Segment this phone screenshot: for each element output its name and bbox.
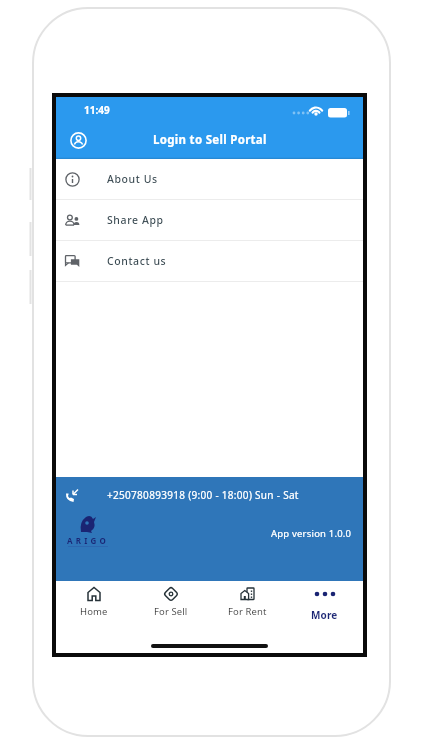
button[interactable]: For Sell (132, 581, 209, 643)
button[interactable]: Share App (56, 200, 363, 240)
button[interactable]: Contact us (56, 241, 363, 281)
button[interactable]: +250780893918 (9:00 - 18:00) Sun - Sat (65, 485, 372, 505)
button[interactable] (64, 126, 92, 154)
staticText: ARIGO (67, 535, 110, 546)
button[interactable]: About Us (56, 159, 363, 199)
staticText: Home (80, 605, 108, 618)
staticText: For Sell (154, 605, 188, 618)
button[interactable]: Home (56, 581, 132, 643)
staticText: Login to Sell Portal (153, 132, 267, 148)
staticText: App version 1.0.0 (271, 527, 352, 540)
button[interactable]: For Rent (209, 581, 286, 643)
staticText: Share App (107, 213, 164, 227)
staticText: More (311, 608, 338, 622)
staticText: About Us (107, 172, 158, 186)
staticText: 11:49 (84, 103, 110, 117)
staticText: For Rent (228, 605, 267, 618)
button[interactable]: More (286, 581, 363, 643)
staticText: Contact us (107, 254, 167, 268)
staticText: +250780893918 (9:00 - 18:00) Sun - Sat (107, 488, 299, 502)
